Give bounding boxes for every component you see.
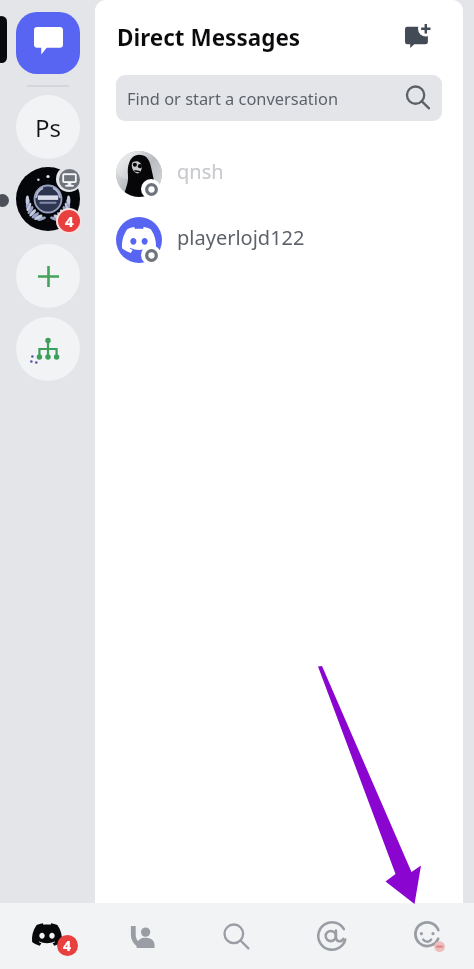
button[interactable]: Add a server [16, 244, 80, 308]
staticText: qnsh [177, 158, 224, 185]
button[interactable]: New direct message [395, 12, 441, 58]
staticText: Find or start a conversation [127, 87, 339, 109]
staticText: Ps [35, 111, 62, 144]
button[interactable]: FIFA server [16, 167, 80, 231]
staticText: Direct Messages [117, 22, 301, 53]
staticText: playerlojd122 [177, 224, 305, 251]
button[interactable]: Servers [0, 903, 94, 969]
button[interactable]: Direct Messages [16, 12, 80, 74]
button[interactable]: Mentions [284, 903, 379, 969]
button[interactable]: playerlojd122 [95, 207, 463, 273]
button[interactable]: You [379, 903, 474, 969]
button[interactable]: Friends [94, 903, 189, 969]
button[interactable]: Search [189, 903, 284, 969]
button[interactable]: Find or start a conversation [116, 75, 442, 121]
staticText: 4 [63, 936, 72, 955]
button[interactable]: Ps server [16, 95, 80, 159]
button[interactable]: Explore public servers [16, 317, 80, 381]
staticText: 4 [65, 211, 74, 231]
button[interactable]: qnsh [95, 141, 463, 207]
